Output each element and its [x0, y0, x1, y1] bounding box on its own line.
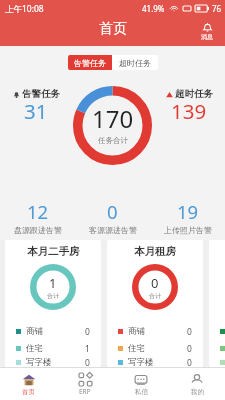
staticText: 盘源跟进告警	[14, 225, 62, 235]
staticText: 超时任务	[119, 58, 151, 68]
staticText: 41.9%	[142, 3, 165, 14]
staticText: 本月租房	[134, 245, 176, 258]
staticText: 商铺	[26, 326, 43, 337]
button[interactable]: 本月新房	[209, 240, 225, 367]
staticText: 170	[92, 102, 134, 135]
staticText: 139	[171, 97, 207, 125]
staticText: ERP	[79, 387, 91, 396]
button[interactable]: 告警任务	[68, 55, 112, 70]
staticText: 住宅	[128, 343, 145, 354]
button[interactable]: 告警任务	[3, 88, 69, 128]
staticText: 商铺	[128, 326, 145, 337]
staticText: 本月二手房	[27, 245, 80, 258]
staticText: 0	[187, 343, 192, 355]
staticText: 消息	[201, 33, 213, 41]
button[interactable]: 本月租房	[107, 240, 203, 367]
staticText: 合计	[47, 292, 59, 300]
staticText: 31	[24, 97, 48, 125]
staticText: 1	[85, 343, 90, 355]
staticText: 住宅	[26, 343, 43, 354]
staticText: 19	[177, 199, 199, 224]
button[interactable]: 消息	[201, 22, 213, 41]
button[interactable]: 超时任务	[156, 88, 222, 128]
staticText: 任务合计	[98, 136, 128, 145]
staticText: 0	[187, 357, 192, 367]
staticText: 写字楼	[128, 357, 154, 367]
staticText: 告警任务	[74, 58, 106, 68]
staticText: 12	[27, 199, 49, 224]
button[interactable]: 我的	[169, 368, 225, 400]
button[interactable]: 私信	[113, 368, 169, 400]
staticText: 合计	[149, 292, 161, 300]
staticText: 0	[151, 274, 159, 292]
staticText: 0	[85, 357, 90, 367]
button[interactable]: 19	[150, 199, 225, 235]
staticText: 0	[187, 326, 192, 338]
staticText: 客源源进告警	[89, 225, 137, 235]
button[interactable]: ERP	[57, 368, 113, 400]
staticText: 告警任务	[22, 88, 60, 100]
staticText: 超时任务	[175, 88, 213, 100]
staticText: 我的	[191, 388, 204, 396]
staticText: 上传照片告警	[164, 225, 212, 235]
button[interactable]: 本月二手房	[5, 240, 101, 367]
staticText: 0	[85, 326, 90, 338]
staticText: 私信	[135, 388, 148, 396]
button[interactable]: 超时任务	[112, 55, 158, 70]
button[interactable]: 首页	[0, 368, 57, 400]
staticText: 上午10:08	[5, 3, 44, 15]
staticText: 1	[49, 274, 57, 292]
button[interactable]: 12	[0, 199, 75, 235]
button[interactable]: 0	[75, 199, 150, 235]
staticText: 写字楼	[26, 357, 52, 367]
staticText: 首页	[22, 388, 35, 396]
staticText: 76	[212, 3, 222, 14]
staticText: 首页	[99, 20, 127, 38]
staticText: 0	[107, 199, 118, 224]
